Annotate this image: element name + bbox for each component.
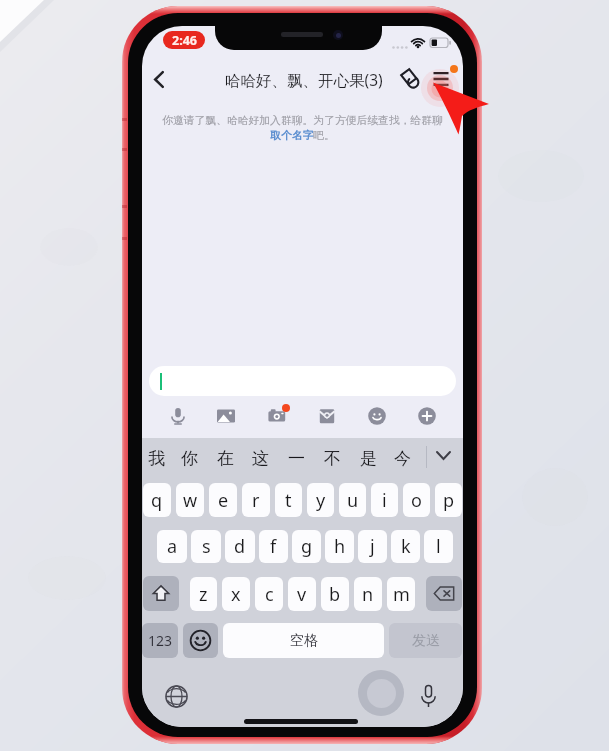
button[interactable]: s [191, 530, 221, 563]
button[interactable]: z [190, 577, 217, 611]
staticText: e [218, 488, 229, 513]
button[interactable]: 发送 [389, 623, 462, 658]
staticText: h [334, 534, 346, 559]
staticText: c [265, 582, 274, 607]
staticText: n [362, 582, 374, 607]
button[interactable]: q [143, 483, 171, 517]
button[interactable]: l [424, 530, 453, 563]
staticText: m [393, 582, 410, 607]
staticText: s [202, 534, 211, 559]
button[interactable] [149, 366, 456, 396]
button[interactable]: y [307, 483, 334, 517]
staticText: v [297, 582, 307, 607]
staticText: 今天 [394, 448, 425, 469]
staticText: r [252, 488, 260, 513]
button[interactable]: Back [142, 59, 176, 99]
button[interactable]: x [222, 577, 250, 611]
staticText: 是 [360, 448, 377, 469]
button[interactable]: i [371, 483, 398, 517]
button[interactable]: w [176, 483, 204, 517]
staticText: p [443, 488, 455, 513]
staticText: 你邀请了飘、哈哈好加入群聊。为了方便后续查找，给群聊取个名字吧。 [161, 114, 444, 142]
button[interactable]: Photo [210, 400, 242, 432]
button[interactable]: m [387, 577, 415, 611]
button[interactable]: 是 [354, 440, 382, 476]
staticText: 不 [324, 448, 341, 469]
button[interactable]: c [255, 577, 283, 611]
staticText: a [167, 534, 178, 559]
button[interactable]: 123 [142, 623, 178, 658]
button[interactable]: Dictation [412, 680, 444, 712]
staticText: 一 [288, 448, 305, 469]
button[interactable]: u [339, 483, 366, 517]
button[interactable]: 在 [211, 440, 239, 476]
button[interactable]: n [354, 577, 382, 611]
staticText: 哈哈好、飘、开心果(3) [225, 69, 383, 90]
button[interactable]: o [403, 483, 430, 517]
staticText: k [401, 534, 411, 559]
button[interactable]: Voice [162, 400, 194, 432]
button[interactable]: e [209, 483, 237, 517]
button[interactable]: 一 [282, 440, 310, 476]
staticText: 我 [148, 448, 165, 469]
button[interactable]: p [435, 483, 462, 517]
button[interactable]: k [391, 530, 420, 563]
staticText: l [436, 534, 441, 559]
staticText: 2:46 [172, 32, 197, 49]
staticText: 这 [252, 448, 269, 469]
button[interactable]: Menu [426, 64, 456, 94]
button[interactable]: Camera [262, 400, 294, 432]
staticText: q [151, 488, 163, 513]
button[interactable]: r [242, 483, 270, 517]
staticText: y [316, 488, 326, 513]
button[interactable]: 我 [142, 440, 170, 476]
button[interactable]: f [259, 530, 288, 563]
button[interactable]: More [411, 400, 443, 432]
button[interactable]: j [358, 530, 387, 563]
button[interactable]: 这 [246, 440, 274, 476]
staticText: i [382, 488, 387, 513]
button[interactable]: Switch language [160, 680, 192, 712]
staticText: o [411, 488, 422, 513]
button[interactable]: h [325, 530, 354, 563]
button[interactable]: Shift [143, 576, 179, 611]
button[interactable]: a [157, 530, 187, 563]
button[interactable]: 你 [175, 440, 203, 476]
button[interactable]: 今天 [394, 440, 425, 476]
button[interactable]: Sticker [395, 63, 425, 93]
staticText: t [285, 488, 292, 513]
staticText: 空格 [290, 632, 318, 650]
button[interactable]: Emoji keyboard [183, 623, 218, 658]
staticText: 123 [148, 631, 173, 650]
staticText: 发送 [412, 632, 440, 650]
button[interactable]: 不 [318, 440, 346, 476]
staticText: g [301, 534, 313, 559]
button[interactable]: Emoji [361, 400, 393, 432]
staticText: j [370, 534, 375, 559]
staticText: d [234, 534, 246, 559]
staticText: 在 [217, 448, 234, 469]
staticText: 你 [181, 448, 198, 469]
staticText: x [231, 582, 241, 607]
button[interactable]: Favorites [311, 400, 343, 432]
button[interactable]: Handwriting pad [358, 670, 404, 716]
staticText: f [270, 534, 277, 559]
button[interactable]: t [275, 483, 302, 517]
button[interactable]: 空格 [223, 623, 384, 658]
button[interactable]: Expand candidates [430, 442, 456, 468]
button[interactable]: d [225, 530, 255, 563]
button[interactable]: v [288, 577, 316, 611]
staticText: w [183, 488, 198, 513]
staticText: b [329, 582, 341, 607]
staticText: u [347, 488, 359, 513]
button[interactable]: Backspace [426, 576, 462, 611]
button[interactable]: g [292, 530, 321, 563]
staticText: z [199, 582, 208, 607]
button[interactable]: b [321, 577, 349, 611]
